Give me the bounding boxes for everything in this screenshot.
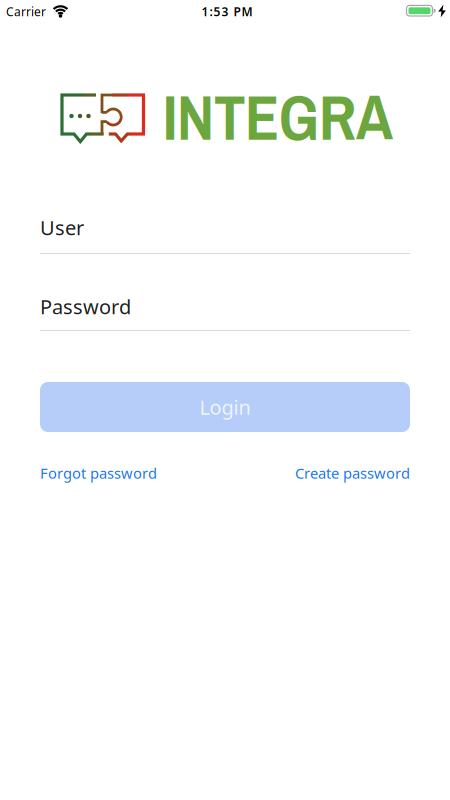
staticText: 1:53 PM xyxy=(201,3,252,19)
staticText: Carrier xyxy=(6,3,46,19)
staticText: User xyxy=(40,214,84,241)
staticText: Password xyxy=(40,293,131,320)
staticText: INTEGRA xyxy=(163,75,393,159)
button[interactable]: Forgot password xyxy=(40,463,157,483)
button[interactable]: Login xyxy=(40,382,410,432)
staticText: Forgot password xyxy=(40,463,157,483)
staticText: Create password xyxy=(295,463,410,483)
staticText: Login xyxy=(199,394,250,420)
button[interactable]: Password xyxy=(40,292,410,332)
button[interactable]: User xyxy=(40,214,410,254)
button[interactable]: Create password xyxy=(295,463,410,483)
